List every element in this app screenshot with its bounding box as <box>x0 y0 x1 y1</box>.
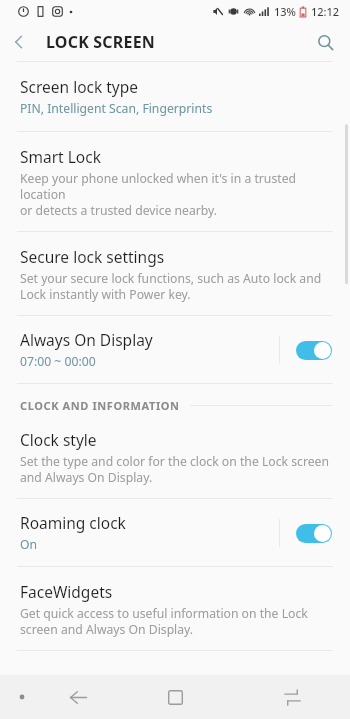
button[interactable]: FaceWidgets <box>0 567 350 650</box>
button[interactable]: Clock style <box>0 421 350 498</box>
button[interactable]: Always On Display <box>0 316 350 383</box>
staticText: 07:00 ~ 00:00 <box>20 353 96 370</box>
staticText: Smart Lock <box>20 146 101 167</box>
button[interactable]: Smart Lock <box>0 132 350 231</box>
button[interactable]: Always On Display toggle <box>292 335 336 365</box>
staticText: Roaming clock <box>20 512 126 533</box>
staticText: Keep your phone unlocked when it's in a … <box>20 170 336 218</box>
staticText: 12:12 <box>311 4 340 19</box>
staticText: FaceWidgets <box>20 581 113 602</box>
staticText: Set your secure lock functions, such as … <box>20 270 322 302</box>
button[interactable]: Search <box>306 23 344 61</box>
button[interactable]: Home <box>153 675 197 719</box>
staticText: LOCK SCREEN <box>46 31 156 53</box>
staticText: Get quick access to useful information o… <box>20 605 308 637</box>
staticText: Screen lock type <box>20 76 139 97</box>
button[interactable]: Back <box>0 23 38 61</box>
button[interactable]: Recents <box>270 675 314 719</box>
staticText: Set the type and color for the clock on … <box>20 453 329 485</box>
staticText: 13% <box>274 4 296 19</box>
button[interactable]: Back <box>56 675 100 719</box>
staticText: Always On Display <box>20 329 153 350</box>
staticText: Clock style <box>20 429 97 450</box>
staticText: Secure lock settings <box>20 246 165 267</box>
staticText: PIN, Intelligent Scan, Fingerprints <box>20 100 213 117</box>
staticText: On <box>20 536 38 553</box>
button[interactable]: Screen lock type <box>0 62 350 131</box>
button[interactable]: Roaming clock <box>0 499 350 566</box>
button[interactable]: Secure lock settings <box>0 232 350 315</box>
button[interactable]: Roaming clock toggle <box>292 518 336 548</box>
staticText: CLOCK AND INFORMATION <box>20 398 180 413</box>
